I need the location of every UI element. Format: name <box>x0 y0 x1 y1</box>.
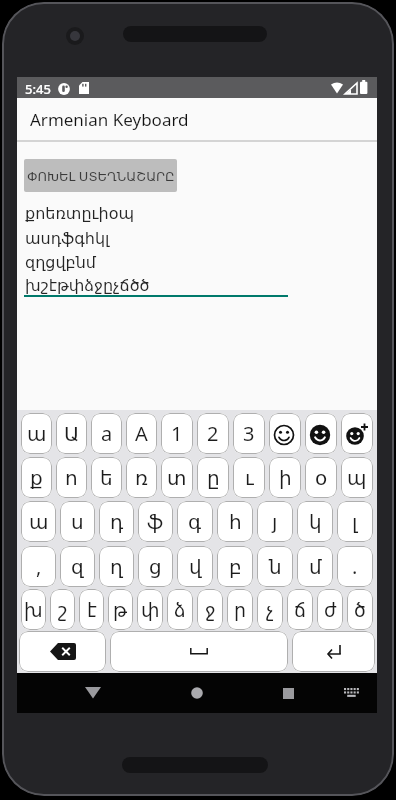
staticText: տ <box>167 466 187 489</box>
staticText: խշէթփձջըչճծծ <box>25 276 150 295</box>
button[interactable]: ր <box>227 589 253 630</box>
staticText: ո <box>65 466 78 489</box>
staticText: Ա <box>64 422 80 445</box>
staticText: ք <box>30 466 43 489</box>
button[interactable]: զ <box>60 546 95 587</box>
staticText: 5:45 <box>25 80 51 98</box>
button[interactable]: ց <box>138 546 173 587</box>
button[interactable]: պ <box>341 457 373 498</box>
button[interactable]: ռ <box>126 457 157 498</box>
button[interactable]: . <box>337 546 373 587</box>
staticText: քոեռտըւիօպ <box>25 204 134 223</box>
button[interactable]: ղ <box>99 546 134 587</box>
button[interactable] <box>110 631 288 672</box>
staticText: ւ <box>245 466 254 489</box>
button[interactable]: բ <box>217 546 253 587</box>
button[interactable]: կ <box>297 501 333 542</box>
button[interactable] <box>332 675 372 711</box>
button[interactable]: ը <box>197 457 229 498</box>
staticText: ռ <box>135 466 148 489</box>
button[interactable]: ծ <box>347 589 373 630</box>
button[interactable]: դ <box>99 501 134 542</box>
button[interactable]: ե <box>91 457 122 498</box>
button[interactable]: հ <box>217 501 253 542</box>
button[interactable]: a <box>91 413 122 454</box>
button[interactable]: ֆ <box>138 501 173 542</box>
staticText: ֆ <box>147 510 164 533</box>
staticText: ր <box>234 599 247 621</box>
button[interactable] <box>19 631 106 672</box>
button[interactable] <box>263 675 313 711</box>
button[interactable]: թ <box>108 589 133 630</box>
staticText: է <box>87 599 97 621</box>
staticText: օ <box>315 466 328 489</box>
button[interactable]: A <box>126 413 157 454</box>
staticText: ծ <box>354 599 366 621</box>
button[interactable] <box>68 675 118 711</box>
button[interactable]: ձ <box>167 589 193 630</box>
button[interactable]: , <box>21 546 56 587</box>
staticText: . <box>352 553 358 580</box>
button[interactable]: ա <box>21 501 56 542</box>
button[interactable]: տ <box>161 457 193 498</box>
button[interactable]: ք <box>21 457 52 498</box>
button[interactable]: ճ <box>287 589 313 630</box>
button[interactable]: խ <box>21 589 46 630</box>
button[interactable]: օ <box>305 457 337 498</box>
staticText: մ <box>309 555 322 578</box>
button[interactable]: Ա <box>56 413 87 454</box>
staticText: ասդֆգհկլ <box>25 229 110 248</box>
button[interactable] <box>341 413 373 454</box>
button[interactable]: ո <box>56 457 87 498</box>
button[interactable]: գ <box>177 501 213 542</box>
staticText: ղ <box>110 555 123 578</box>
button[interactable] <box>305 413 337 454</box>
staticText: զ <box>71 555 84 578</box>
staticText: կ <box>309 510 322 533</box>
button[interactable]: շ <box>50 589 75 630</box>
staticText: a <box>101 420 113 447</box>
staticText: ա <box>27 422 47 445</box>
staticText: ը <box>207 466 220 489</box>
button[interactable] <box>292 631 375 672</box>
button[interactable]: 3 <box>233 413 265 454</box>
staticText: 2 <box>207 420 219 447</box>
button[interactable]: ն <box>257 546 293 587</box>
button[interactable] <box>269 413 301 454</box>
button[interactable]: մ <box>297 546 333 587</box>
button[interactable]: ս <box>60 501 95 542</box>
staticText: դ <box>110 510 124 533</box>
staticText: չ <box>266 599 274 621</box>
staticText: ի <box>279 466 292 489</box>
button[interactable]: յ <box>257 501 293 542</box>
button[interactable]: ի <box>269 457 301 498</box>
button[interactable]: 2 <box>197 413 229 454</box>
staticText: բ <box>229 555 242 578</box>
button[interactable]: ւ <box>233 457 265 498</box>
staticText: A <box>135 420 148 447</box>
staticText: 3 <box>243 420 255 447</box>
staticText: ն <box>269 555 282 578</box>
button[interactable]: վ <box>177 546 213 587</box>
staticText: ջ <box>205 599 216 621</box>
button[interactable]: ջ <box>197 589 223 630</box>
button[interactable]: չ <box>257 589 283 630</box>
staticText: հ <box>229 510 242 533</box>
staticText: ճ <box>294 599 306 621</box>
staticText: ս <box>71 510 84 533</box>
button[interactable]: ՓՈԽԵԼ ՍՏԵՂՆԱՇԱՐԸ <box>24 159 177 192</box>
staticText: զղցվբնմ <box>25 253 96 272</box>
staticText: լ <box>352 510 358 533</box>
button[interactable]: է <box>79 589 104 630</box>
staticText: շ <box>58 599 68 621</box>
button[interactable]: ժ <box>317 589 343 630</box>
staticText: , <box>36 553 42 580</box>
button[interactable]: ա <box>21 413 52 454</box>
button[interactable]: 1 <box>161 413 193 454</box>
staticText: Armenian Keyboard <box>30 108 189 131</box>
button[interactable]: լ <box>337 501 373 542</box>
button[interactable]: փ <box>137 589 163 630</box>
staticText: ա <box>29 510 49 533</box>
button[interactable] <box>172 675 222 711</box>
staticText: 1 <box>171 420 183 447</box>
